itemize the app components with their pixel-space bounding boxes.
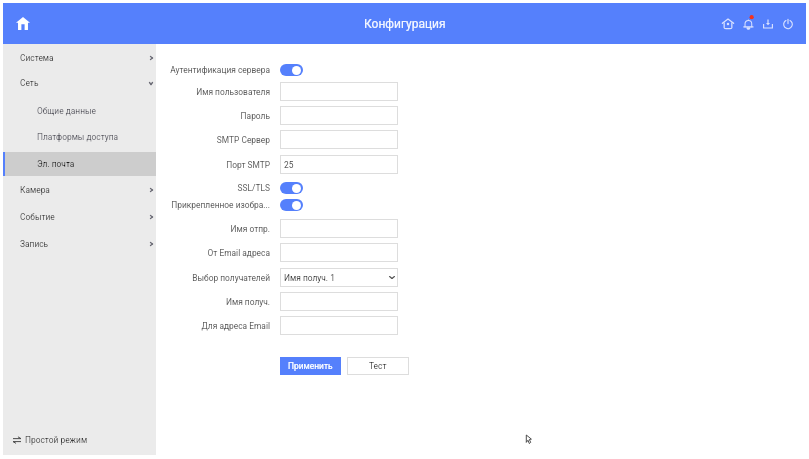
button[interactable]: Text field [280,106,398,125]
button[interactable]: Простой режим [3,427,156,453]
button[interactable]: Toggle [280,182,303,194]
button[interactable]: Notifications [738,12,758,36]
button[interactable]: Имя получ. 1 [280,268,398,287]
staticText: Имя отпр. [230,224,270,234]
staticText: Пароль [240,111,270,121]
button[interactable]: Toggle [280,64,303,76]
button[interactable]: Тест [347,357,409,375]
button[interactable]: Камера [3,176,156,203]
button[interactable]: Сеть [3,69,156,96]
button[interactable]: Download [758,12,778,36]
button[interactable]: Запись [3,230,156,257]
staticText: Для адреса Email [201,321,270,331]
staticText: Простой режим [25,435,88,445]
staticText: Сеть [20,78,39,88]
button[interactable]: Применить [280,357,341,375]
staticText: Конфигурация [364,17,446,31]
button[interactable]: Power [778,12,798,36]
staticText: От Email адреса [207,248,270,258]
button[interactable]: Toggle [280,199,303,211]
staticText: Камера [20,185,50,195]
staticText: SMTP Сервер [216,135,270,145]
staticText: SSL/TLS [237,183,270,193]
staticText: Имя получ. [225,297,270,307]
button[interactable]: Text field [280,155,398,174]
staticText: Событие [20,212,55,222]
button[interactable]: Событие [3,203,156,230]
button[interactable]: Общие данные [3,97,156,124]
button[interactable]: Text field [280,219,398,238]
staticText: Порт SMTP [226,160,270,170]
staticText: Выбор получателей [192,273,270,283]
staticText: 25 [284,160,294,170]
staticText: Применить [288,361,333,371]
staticText: Тест [369,361,387,371]
button[interactable]: Text field [280,130,398,149]
staticText: Запись [20,239,49,249]
button[interactable]: Text field [280,82,398,101]
staticText: Общие данные [37,106,96,116]
button[interactable]: Эл. почта [3,150,156,177]
staticText: Эл. почта [37,159,75,169]
button[interactable]: Text field [280,292,398,311]
staticText: Имя получ. 1 [284,273,335,283]
button[interactable]: Home [10,11,36,37]
staticText: Платформы доступа [37,132,119,142]
button[interactable]: Платформы доступа [3,123,156,150]
staticText: Система [20,53,54,63]
button[interactable]: Home [718,12,738,36]
button[interactable]: Text field [280,243,398,262]
staticText: Имя пользователя [196,87,270,97]
staticText: Прикрепленное изобра... [171,200,270,210]
button[interactable]: Система [3,44,156,71]
staticText: Аутентификация сервера [170,65,270,75]
button[interactable]: Text field [280,316,398,335]
